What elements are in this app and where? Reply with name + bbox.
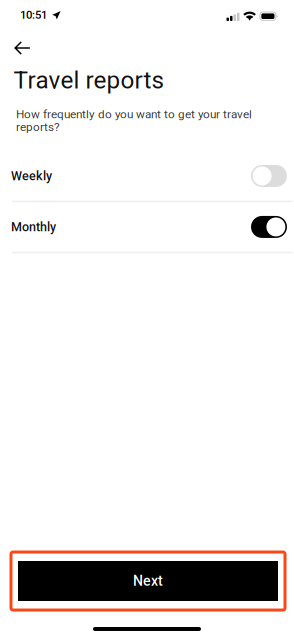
button[interactable]: Back [9, 33, 35, 63]
staticText: Next [133, 573, 163, 589]
button[interactable]: Weekly [0, 151, 294, 202]
staticText: Weekly [11, 169, 52, 183]
staticText: Travel reports [13, 66, 164, 94]
staticText: How frequently do you want to get your t… [16, 107, 252, 134]
staticText: Monthly [11, 220, 56, 234]
button[interactable]: Next [11, 552, 285, 610]
staticText: 10:51 [20, 8, 47, 22]
button[interactable]: Monthly [0, 202, 294, 253]
